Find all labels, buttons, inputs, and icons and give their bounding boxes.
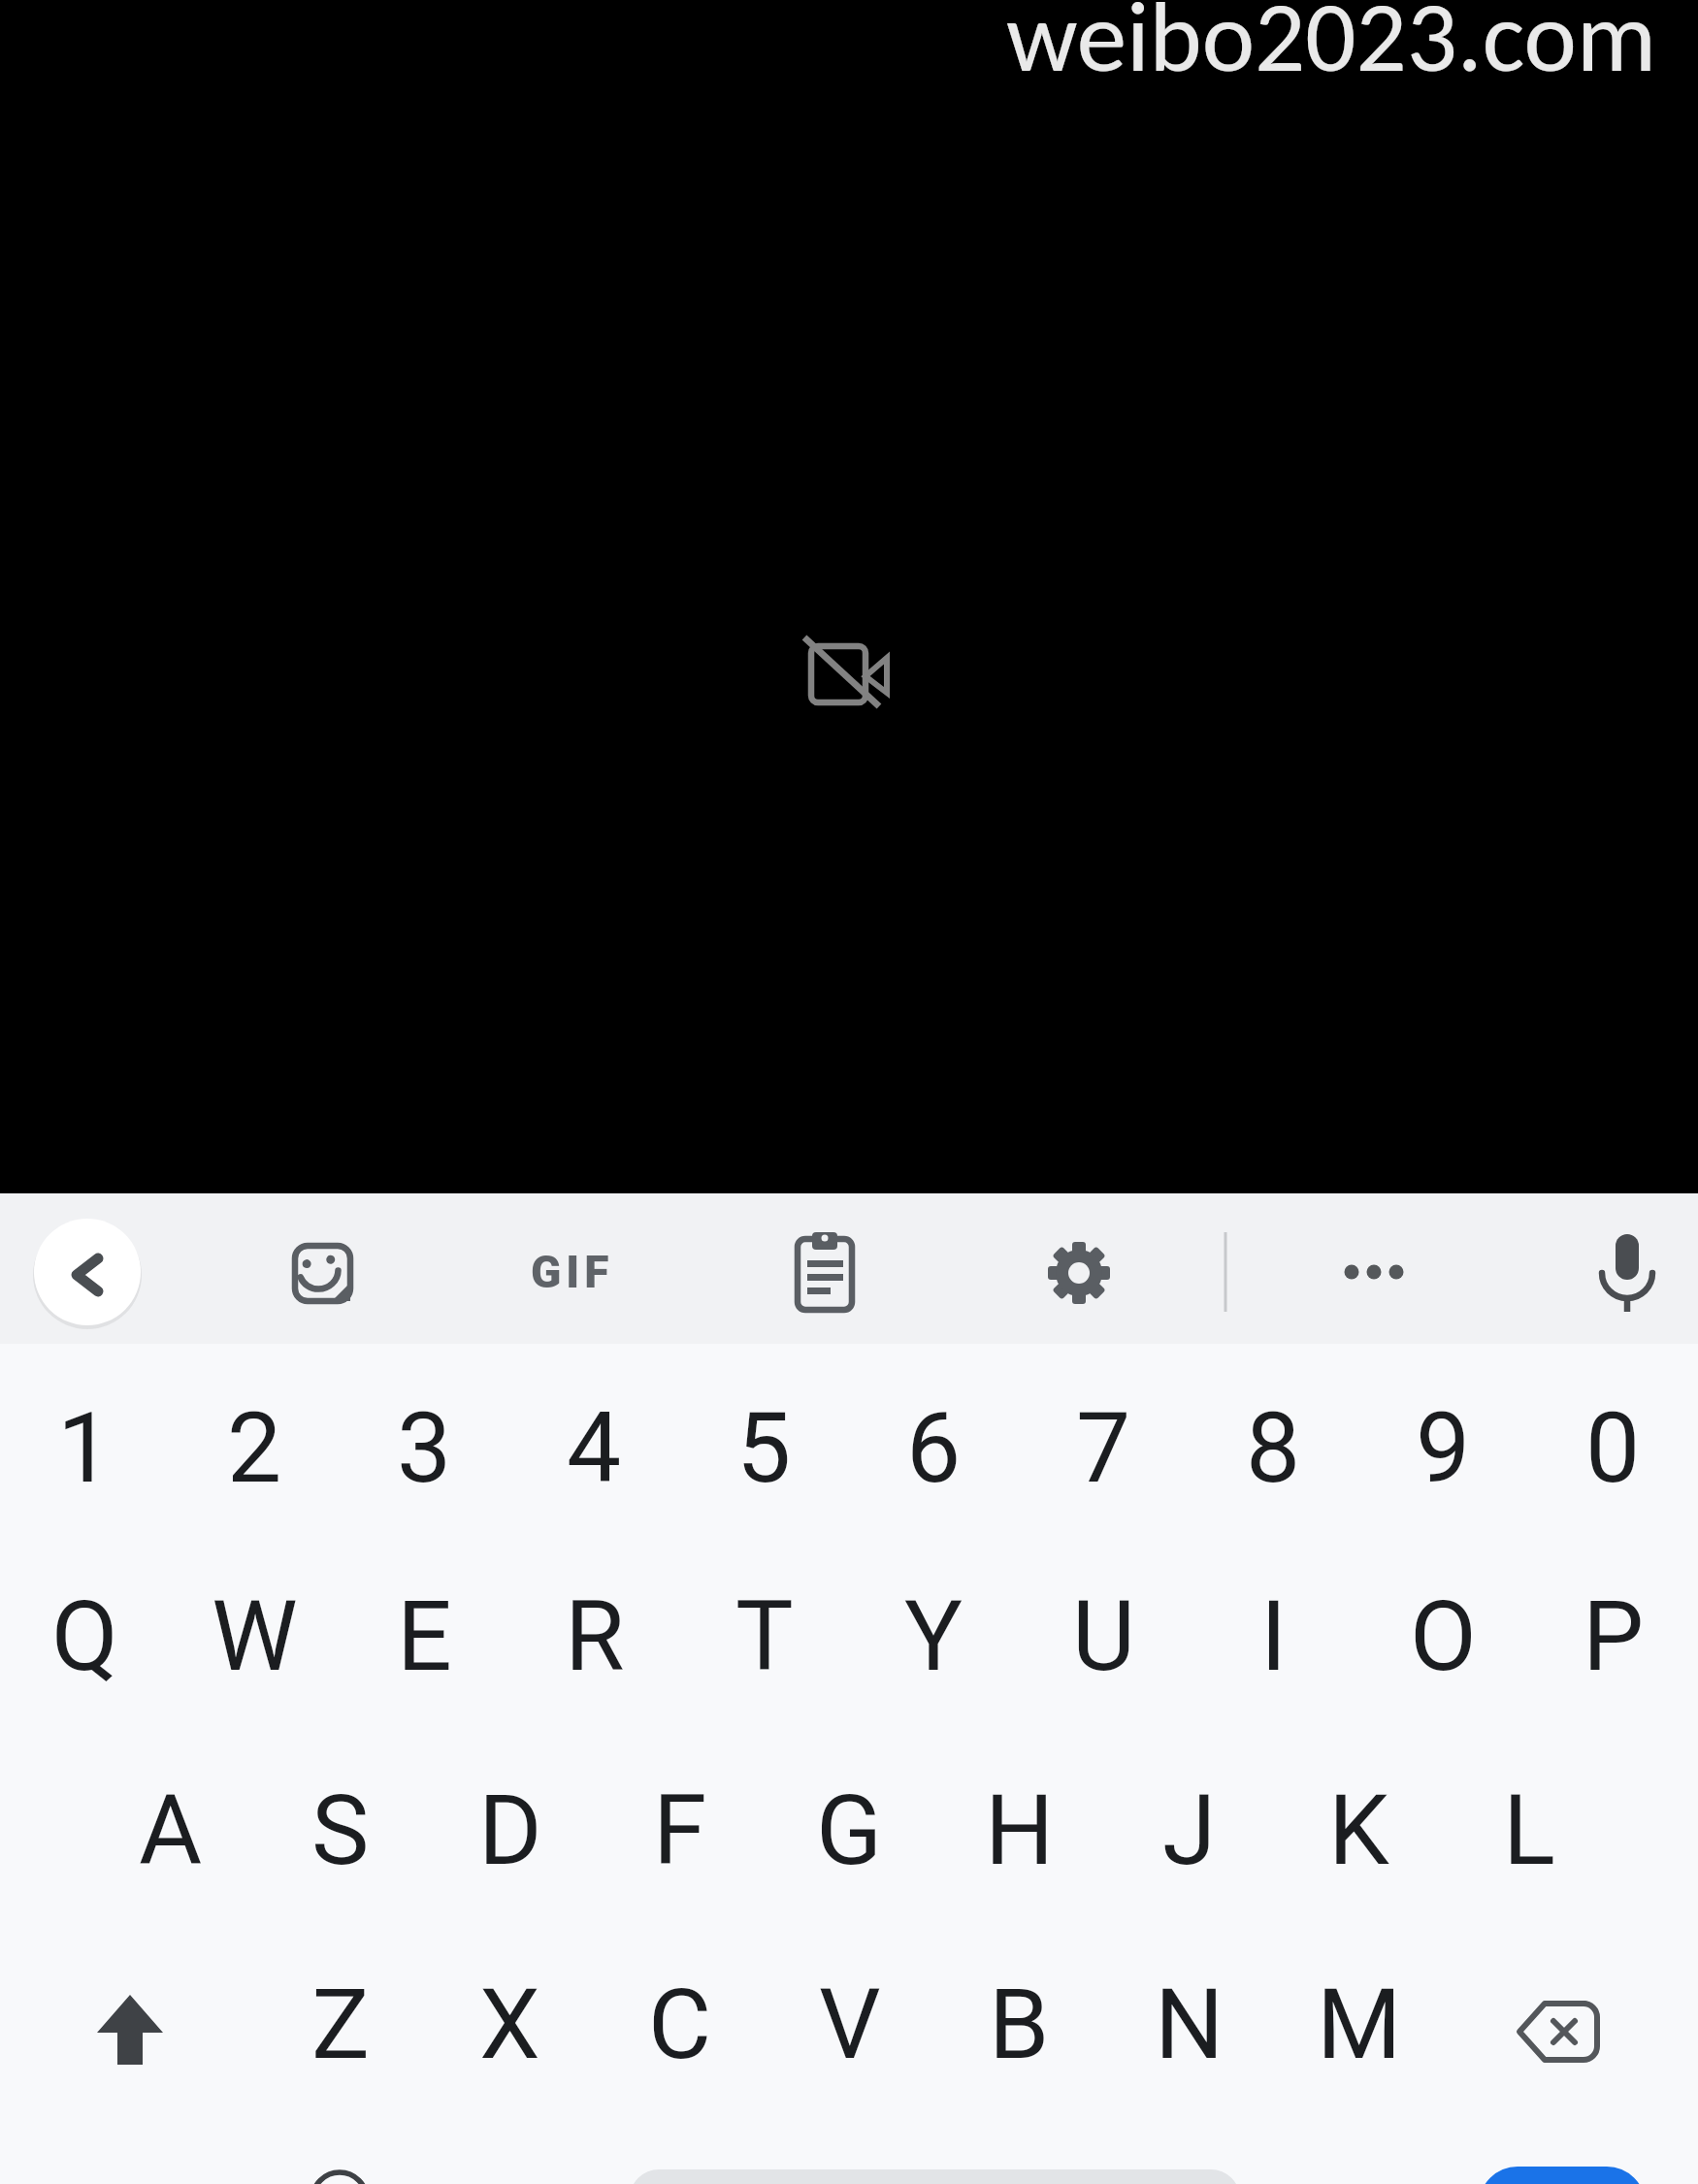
button[interactable]: N [1104,1928,1274,2120]
staticText: 4 [567,1391,622,1505]
button[interactable]: 8 [1189,1352,1358,1544]
button[interactable] [767,1205,883,1341]
button[interactable] [630,2169,1240,2184]
button[interactable]: G [765,1734,934,1926]
staticText: M [1317,1968,1402,2081]
staticText: GIF [531,1246,614,1298]
button[interactable]: U [1019,1540,1189,1732]
button[interactable] [34,1219,141,1325]
button[interactable]: I [1189,1540,1358,1732]
button[interactable]: W [170,1540,340,1732]
button[interactable]: C [595,1928,765,2120]
staticText: 3 [397,1391,452,1505]
staticText: 2 [227,1391,282,1505]
staticText: 8 [1246,1391,1301,1505]
button[interactable]: 7 [1019,1352,1189,1544]
staticText: 5 [736,1391,792,1505]
button[interactable]: D [425,1734,595,1926]
button[interactable]: X [425,1928,595,2120]
button[interactable]: E [340,1540,509,1732]
staticText: W [212,1580,298,1693]
button[interactable]: 2 [170,1352,340,1544]
button[interactable]: 1 [0,1352,170,1544]
staticText: weibo2023.com [1006,0,1657,98]
button[interactable]: 5 [679,1352,849,1544]
button[interactable]: 6 [849,1352,1019,1544]
button[interactable]: M [1274,1928,1444,2120]
button[interactable]: 3 [340,1352,509,1544]
staticText: O [1410,1580,1477,1693]
button[interactable] [1021,1205,1137,1341]
staticText: 6 [906,1391,962,1505]
staticText: Z [311,1968,370,2081]
button[interactable]: J [1104,1734,1274,1926]
staticText: F [653,1774,707,1887]
staticText: L [1503,1774,1555,1887]
button[interactable]: 9 [1358,1352,1528,1544]
button[interactable]: R [509,1540,679,1732]
staticText: R [565,1580,625,1693]
staticText: P [1583,1580,1645,1693]
button[interactable]: L [1444,1734,1614,1926]
button[interactable]: 4 [509,1352,679,1544]
button[interactable] [255,2120,425,2184]
button[interactable] [1486,1928,1655,2120]
staticText: 9 [1416,1391,1471,1505]
staticText: T [735,1580,794,1693]
staticText: X [479,1968,540,2081]
button[interactable] [264,1205,380,1341]
staticText: A [139,1774,203,1887]
button[interactable] [1316,1205,1432,1341]
staticText: U [1072,1580,1135,1693]
button[interactable]: A [85,1734,255,1926]
staticText: H [985,1774,1055,1887]
staticText: 0 [1585,1391,1641,1505]
staticText: D [478,1774,542,1887]
button[interactable] [1479,2167,1646,2184]
button[interactable]: F [595,1734,765,1926]
staticText: B [989,1968,1050,2081]
staticText: K [1328,1774,1389,1887]
staticText: E [397,1580,452,1693]
button[interactable]: H [934,1734,1104,1926]
staticText: 1 [57,1391,113,1505]
staticText: J [1162,1774,1217,1887]
button[interactable]: Z [255,1928,425,2120]
button[interactable]: P [1528,1540,1698,1732]
staticText: I [1260,1580,1288,1693]
button[interactable]: 0 [1528,1352,1698,1544]
button[interactable]: Y [849,1540,1019,1732]
button[interactable]: S [255,1734,425,1926]
button[interactable]: Q [0,1540,170,1732]
button[interactable]: V [765,1928,934,2120]
button[interactable] [1569,1205,1685,1341]
button[interactable]: B [934,1928,1104,2120]
staticText: C [648,1968,712,2081]
staticText: Y [904,1580,963,1693]
staticText: Q [51,1580,118,1693]
button[interactable]: K [1274,1734,1444,1926]
button[interactable] [43,1928,212,2120]
staticText: V [819,1968,881,2081]
button[interactable]: O [1358,1540,1528,1732]
staticText: N [1155,1968,1225,2081]
staticText: 7 [1076,1391,1131,1505]
staticText: G [816,1774,883,1887]
button[interactable]: GIF [514,1204,631,1340]
button[interactable]: T [679,1540,849,1732]
staticText: S [311,1774,370,1887]
